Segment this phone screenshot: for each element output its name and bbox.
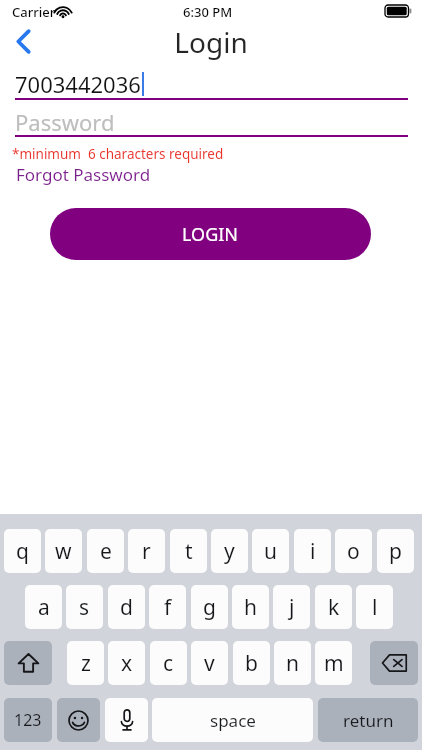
button[interactable]: k: [315, 585, 352, 629]
staticText: v: [204, 649, 215, 678]
button[interactable]: t: [170, 529, 207, 573]
button[interactable]: a: [25, 585, 62, 629]
staticText: Forgot Password: [16, 163, 151, 186]
button[interactable]: space: [152, 698, 313, 742]
button[interactable]: b: [233, 641, 270, 685]
button[interactable]: Shift: [4, 641, 52, 685]
button[interactable]: Emoji: [57, 698, 100, 742]
staticText: j: [289, 593, 295, 622]
staticText: a: [38, 593, 50, 622]
button[interactable]: Password: [15, 107, 408, 135]
staticText: d: [120, 593, 133, 622]
staticText: m: [324, 649, 344, 678]
staticText: g: [203, 593, 216, 622]
staticText: w: [55, 537, 72, 566]
staticText: 7003442036: [15, 69, 141, 99]
button[interactable]: h: [232, 585, 269, 629]
button[interactable]: f: [149, 585, 186, 629]
button[interactable]: i: [294, 529, 331, 573]
button[interactable]: g: [191, 585, 228, 629]
staticText: Login: [0, 23, 422, 61]
staticText: r: [142, 537, 151, 566]
staticText: y: [224, 537, 235, 566]
staticText: q: [16, 537, 29, 566]
button[interactable]: r: [128, 529, 165, 573]
staticText: e: [100, 537, 112, 566]
button[interactable]: v: [191, 641, 228, 685]
button[interactable]: m: [315, 641, 352, 685]
button[interactable]: o: [335, 529, 372, 573]
button[interactable]: l: [356, 585, 393, 629]
staticText: *minimum 6 characters required: [12, 145, 224, 163]
staticText: i: [310, 537, 316, 566]
staticText: p: [389, 537, 402, 566]
button[interactable]: y: [211, 529, 248, 573]
staticText: return: [343, 709, 394, 732]
staticText: h: [244, 593, 257, 622]
staticText: space: [210, 709, 256, 732]
button[interactable]: Back: [1, 24, 45, 58]
staticText: 6:30 PM: [183, 3, 233, 21]
staticText: 123: [14, 709, 42, 731]
staticText: t: [185, 537, 193, 566]
staticText: Carrier: [12, 3, 56, 21]
button[interactable]: Backspace: [370, 641, 418, 685]
button[interactable]: c: [150, 641, 187, 685]
staticText: b: [245, 649, 258, 678]
button[interactable]: z: [67, 641, 104, 685]
button[interactable]: q: [4, 529, 41, 573]
button[interactable]: LOGIN: [50, 208, 371, 260]
staticText: k: [328, 593, 340, 622]
button[interactable]: j: [273, 585, 310, 629]
staticText: s: [79, 593, 90, 622]
button[interactable]: u: [252, 529, 289, 573]
button[interactable]: p: [377, 529, 414, 573]
staticText: l: [372, 593, 378, 622]
staticText: n: [286, 649, 299, 678]
button[interactable]: s: [66, 585, 103, 629]
staticText: f: [164, 593, 172, 622]
staticText: u: [264, 537, 277, 566]
button[interactable]: Dictation: [105, 698, 148, 742]
button[interactable]: e: [87, 529, 124, 573]
staticText: LOGIN: [182, 222, 239, 247]
button[interactable]: 123: [4, 698, 52, 742]
button[interactable]: 7003442036: [15, 69, 408, 99]
button[interactable]: w: [45, 529, 82, 573]
button[interactable]: d: [108, 585, 145, 629]
button[interactable]: return: [318, 698, 418, 742]
button[interactable]: n: [274, 641, 311, 685]
staticText: z: [81, 649, 91, 678]
staticText: x: [121, 649, 133, 678]
staticText: c: [163, 649, 174, 678]
button[interactable]: Forgot Password: [15, 162, 152, 187]
button[interactable]: x: [108, 641, 145, 685]
staticText: Password: [15, 107, 115, 135]
staticText: o: [347, 537, 360, 566]
